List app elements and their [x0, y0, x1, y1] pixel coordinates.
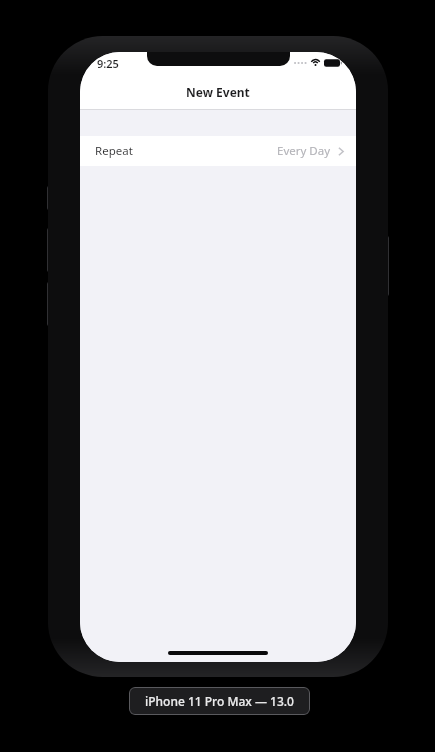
button[interactable]: Device: iPhone 11 Pro Max, iOS 13.0 — [129, 687, 310, 715]
button[interactable]: Repeat — [80, 136, 356, 166]
staticText: iPhone 11 Pro Max — 13.0 — [145, 693, 294, 709]
staticText: New Event — [186, 84, 250, 100]
staticText: Repeat — [95, 143, 133, 159]
staticText: Every Day — [277, 143, 331, 159]
staticText: 9:25 — [97, 56, 119, 71]
